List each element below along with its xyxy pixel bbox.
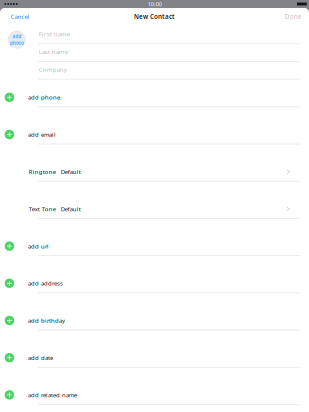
staticText: Text Tone [29,205,56,213]
staticText: add phone [28,93,60,101]
staticText: Default [61,205,81,213]
staticText: add birthday [28,316,65,324]
button[interactable]: Cancel [0,8,37,25]
button[interactable]: First name [0,32,309,50]
staticText: photo [10,40,24,46]
staticText: 10:00 [147,0,161,8]
staticText: Done [285,12,302,21]
staticText: Ringtone [29,168,56,176]
button[interactable]: add address [0,278,309,315]
staticText: Last name [39,47,68,56]
button[interactable]: Done [277,8,309,25]
button[interactable]: Add photo [8,31,26,49]
button[interactable]: Ringtone [0,166,309,204]
staticText: Company [39,65,67,73]
button[interactable]: Company [0,68,309,85]
staticText: add [12,33,21,40]
button[interactable]: add date [0,352,309,390]
button[interactable]: add url [0,241,309,278]
button[interactable]: Last name [0,50,309,68]
staticText: First name [39,30,70,38]
staticText: Default [61,168,81,176]
staticText: add url [28,242,49,250]
button[interactable]: add birthday [0,315,309,352]
staticText: add related name [28,391,77,399]
button[interactable]: add related name [0,390,309,412]
button[interactable]: add email [0,129,309,166]
staticText: New Contact [134,12,175,21]
staticText: add address [28,279,63,287]
button[interactable]: Text Tone [0,204,309,241]
button[interactable]: add phone [0,92,309,129]
staticText: Cancel [10,12,29,21]
staticText: add date [28,354,53,362]
staticText: add email [28,130,56,138]
